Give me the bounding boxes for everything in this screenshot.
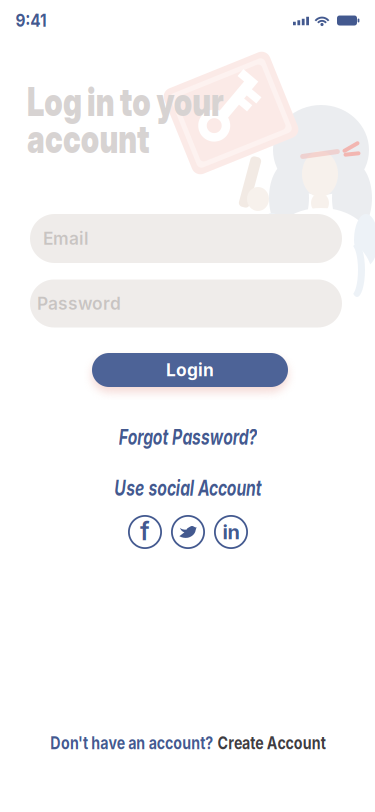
- button[interactable]: Login: [92, 353, 288, 387]
- button[interactable]: Log in with LinkedIn: [214, 515, 248, 549]
- button[interactable]: Log in with Twitter: [171, 515, 205, 549]
- staticText: Log in to your: [27, 79, 279, 125]
- staticText: Login: [166, 360, 214, 380]
- button[interactable]: Log in with Facebook: [128, 515, 162, 549]
- staticText: Password: [37, 293, 121, 314]
- staticText: Don't have an account?: [20, 733, 219, 753]
- staticText: Use social Account: [88, 475, 287, 501]
- staticText: Create Account: [224, 733, 356, 753]
- button[interactable]: Forgot Password?: [94, 424, 281, 450]
- staticText: in: [222, 520, 239, 544]
- button[interactable]: Password: [30, 279, 342, 327]
- button[interactable]: Email: [30, 214, 342, 263]
- staticText: f: [140, 516, 150, 546]
- staticText: account: [27, 116, 184, 162]
- staticText: Forgot Password?: [94, 424, 281, 450]
- staticText: 9:41: [12, 9, 50, 31]
- staticText: Email: [43, 228, 89, 249]
- button[interactable]: Don't have an account?: [20, 733, 356, 753]
